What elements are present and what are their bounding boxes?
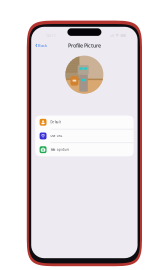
button[interactable]: Take a picture xyxy=(35,143,134,156)
staticText: Use URL xyxy=(50,134,62,138)
staticText: Default xyxy=(50,120,61,124)
staticText: 04:17 xyxy=(46,33,55,38)
button[interactable]: Use URL xyxy=(35,129,134,143)
button[interactable]: Back xyxy=(31,40,47,50)
staticText: Profile Picture xyxy=(68,42,101,49)
button[interactable]: Default xyxy=(35,116,134,129)
staticText: Back xyxy=(38,43,47,48)
staticText: Take a picture xyxy=(50,148,69,151)
